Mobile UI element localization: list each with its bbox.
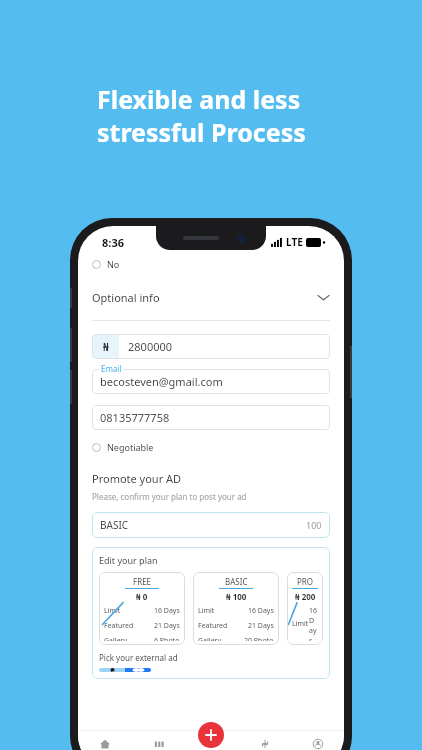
staticText: Please, confirm your plan to post your a… xyxy=(92,491,247,502)
staticText: 21 Days xyxy=(248,621,274,631)
staticText: Flexible and less stressful Process xyxy=(97,82,306,149)
staticText: 08135777758 xyxy=(100,410,170,425)
staticText: BASIC xyxy=(225,576,248,587)
staticText: 16 Days xyxy=(309,606,318,641)
button[interactable]: FREE xyxy=(99,572,185,645)
other: Instagram xyxy=(132,668,145,672)
button[interactable]: Sell xyxy=(198,722,224,750)
button[interactable]: Home xyxy=(78,738,132,750)
staticText: Featured xyxy=(104,621,134,631)
staticText: LTE xyxy=(286,235,303,249)
staticText: 6 Photo xyxy=(154,636,180,641)
staticText: ₦ xyxy=(103,340,109,354)
staticText: 2800000 xyxy=(128,339,173,354)
button[interactable]: 08135777758 xyxy=(92,405,330,430)
staticText: Edit your plan xyxy=(99,554,158,566)
staticText: PRO xyxy=(297,576,314,587)
staticText: 20 Photo xyxy=(244,636,274,641)
button[interactable]: Offers xyxy=(238,738,291,750)
staticText: 16 Days xyxy=(154,606,180,616)
staticText: becosteven@gmail.com xyxy=(100,374,223,389)
button[interactable]: BASIC xyxy=(193,572,279,645)
button[interactable]: Profile xyxy=(291,738,344,750)
button[interactable]: Optional info xyxy=(92,282,330,313)
staticText: 100 xyxy=(306,519,322,531)
staticText: Optional info xyxy=(92,290,160,305)
staticText: Gallery xyxy=(198,636,222,641)
staticText: BASIC xyxy=(100,518,129,532)
staticText: 21 Days xyxy=(154,621,180,631)
button[interactable]: PRO xyxy=(287,572,323,645)
other: Facebook xyxy=(106,668,119,672)
staticText: Pick your external ad xyxy=(99,652,178,663)
staticText: Limit xyxy=(104,606,121,616)
other: Sell xyxy=(205,729,217,741)
staticText: Promote your AD xyxy=(92,471,182,486)
button[interactable]: becosteven@gmail.com xyxy=(92,369,330,394)
button[interactable]: No xyxy=(92,256,120,272)
staticText: ₦ 100 xyxy=(226,591,247,602)
button[interactable]: ₦ xyxy=(92,334,330,359)
staticText: Limit xyxy=(292,619,309,629)
button[interactable]: BASIC xyxy=(92,512,330,538)
staticText: 8:36 xyxy=(102,235,124,250)
staticText: 16 Days xyxy=(248,606,274,616)
button[interactable]: Ads xyxy=(132,738,185,750)
other: Expand xyxy=(317,291,330,304)
staticText: Limit xyxy=(198,606,215,616)
staticText: Featured xyxy=(198,621,228,631)
staticText: FREE xyxy=(133,576,152,587)
staticText: Gallery xyxy=(104,636,128,641)
button[interactable]: Negotiable xyxy=(92,439,154,455)
button[interactable]: Facebook xyxy=(99,668,151,672)
staticText: ₦ 0 xyxy=(136,591,148,602)
staticText: ₦ 200 xyxy=(295,591,316,602)
staticText: Negotiable xyxy=(107,441,154,453)
staticText: Email xyxy=(101,363,122,374)
staticText: No xyxy=(107,258,120,270)
